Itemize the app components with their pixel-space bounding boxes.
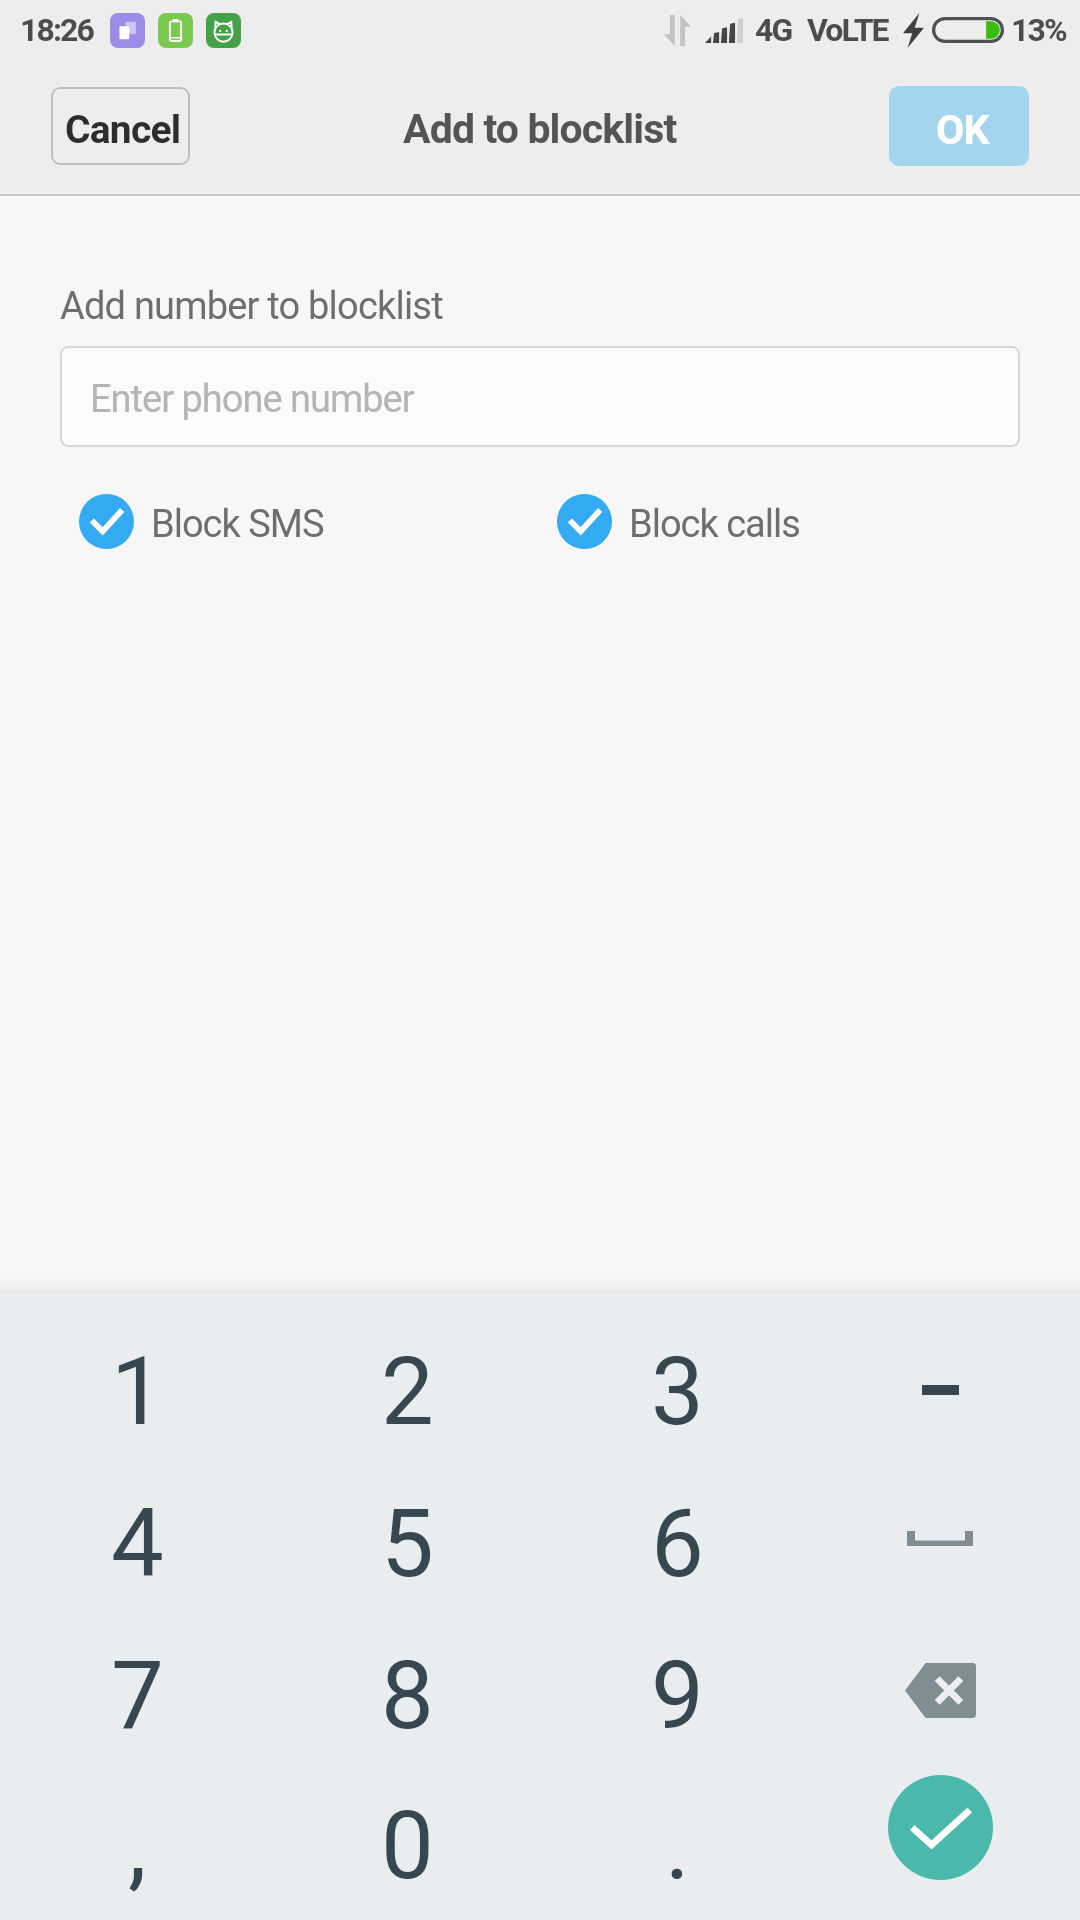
staticText: 5 [381,1489,434,1599]
staticText: Add number to blocklist [60,284,443,329]
button[interactable]: OK [889,86,1029,166]
button[interactable]: 5 [270,1469,540,1621]
button[interactable]: Block SMS [79,494,324,549]
button[interactable]: Dash [810,1317,1080,1469]
button[interactable]: 9 [540,1621,810,1773]
button[interactable]: Space [810,1469,1080,1621]
button[interactable]: 2 [270,1317,540,1469]
button[interactable]: Cancel [51,87,190,165]
staticText: 8 [381,1641,434,1751]
staticText: 4 [111,1489,164,1599]
staticText: . [665,1791,690,1901]
button[interactable]: 7 [0,1621,270,1773]
staticText: , [128,1791,147,1901]
button[interactable]: , [0,1773,270,1920]
staticText: 0 [381,1791,434,1901]
staticText: Block SMS [151,502,324,547]
staticText: 1 [111,1337,164,1447]
button[interactable]: Confirm [810,1773,1080,1920]
staticText: Block calls [629,502,800,547]
staticText: VoLTE [807,11,888,49]
staticText: 3 [651,1337,704,1447]
staticText: 13% [1011,11,1066,49]
button[interactable]: 6 [540,1469,810,1621]
button[interactable]: 3 [540,1317,810,1469]
button[interactable]: 0 [270,1773,540,1920]
staticText: 7 [111,1641,164,1751]
staticText: 18:26 [20,11,93,49]
staticText: 9 [651,1641,704,1751]
button[interactable]: . [540,1773,810,1920]
button[interactable]: 8 [270,1621,540,1773]
staticText: Add to blocklist [403,105,677,153]
button[interactable]: 4 [0,1469,270,1621]
button[interactable]: 1 [0,1317,270,1469]
staticText: Enter phone number [90,377,414,422]
staticText: 4G [755,11,792,49]
button[interactable]: Phone number input [60,346,1020,447]
button[interactable]: Block calls [557,494,800,549]
staticText: OK [936,106,989,154]
button[interactable]: Backspace [810,1621,1080,1773]
staticText: 6 [651,1489,704,1599]
staticText: 2 [381,1337,434,1447]
staticText: Cancel [65,107,181,153]
